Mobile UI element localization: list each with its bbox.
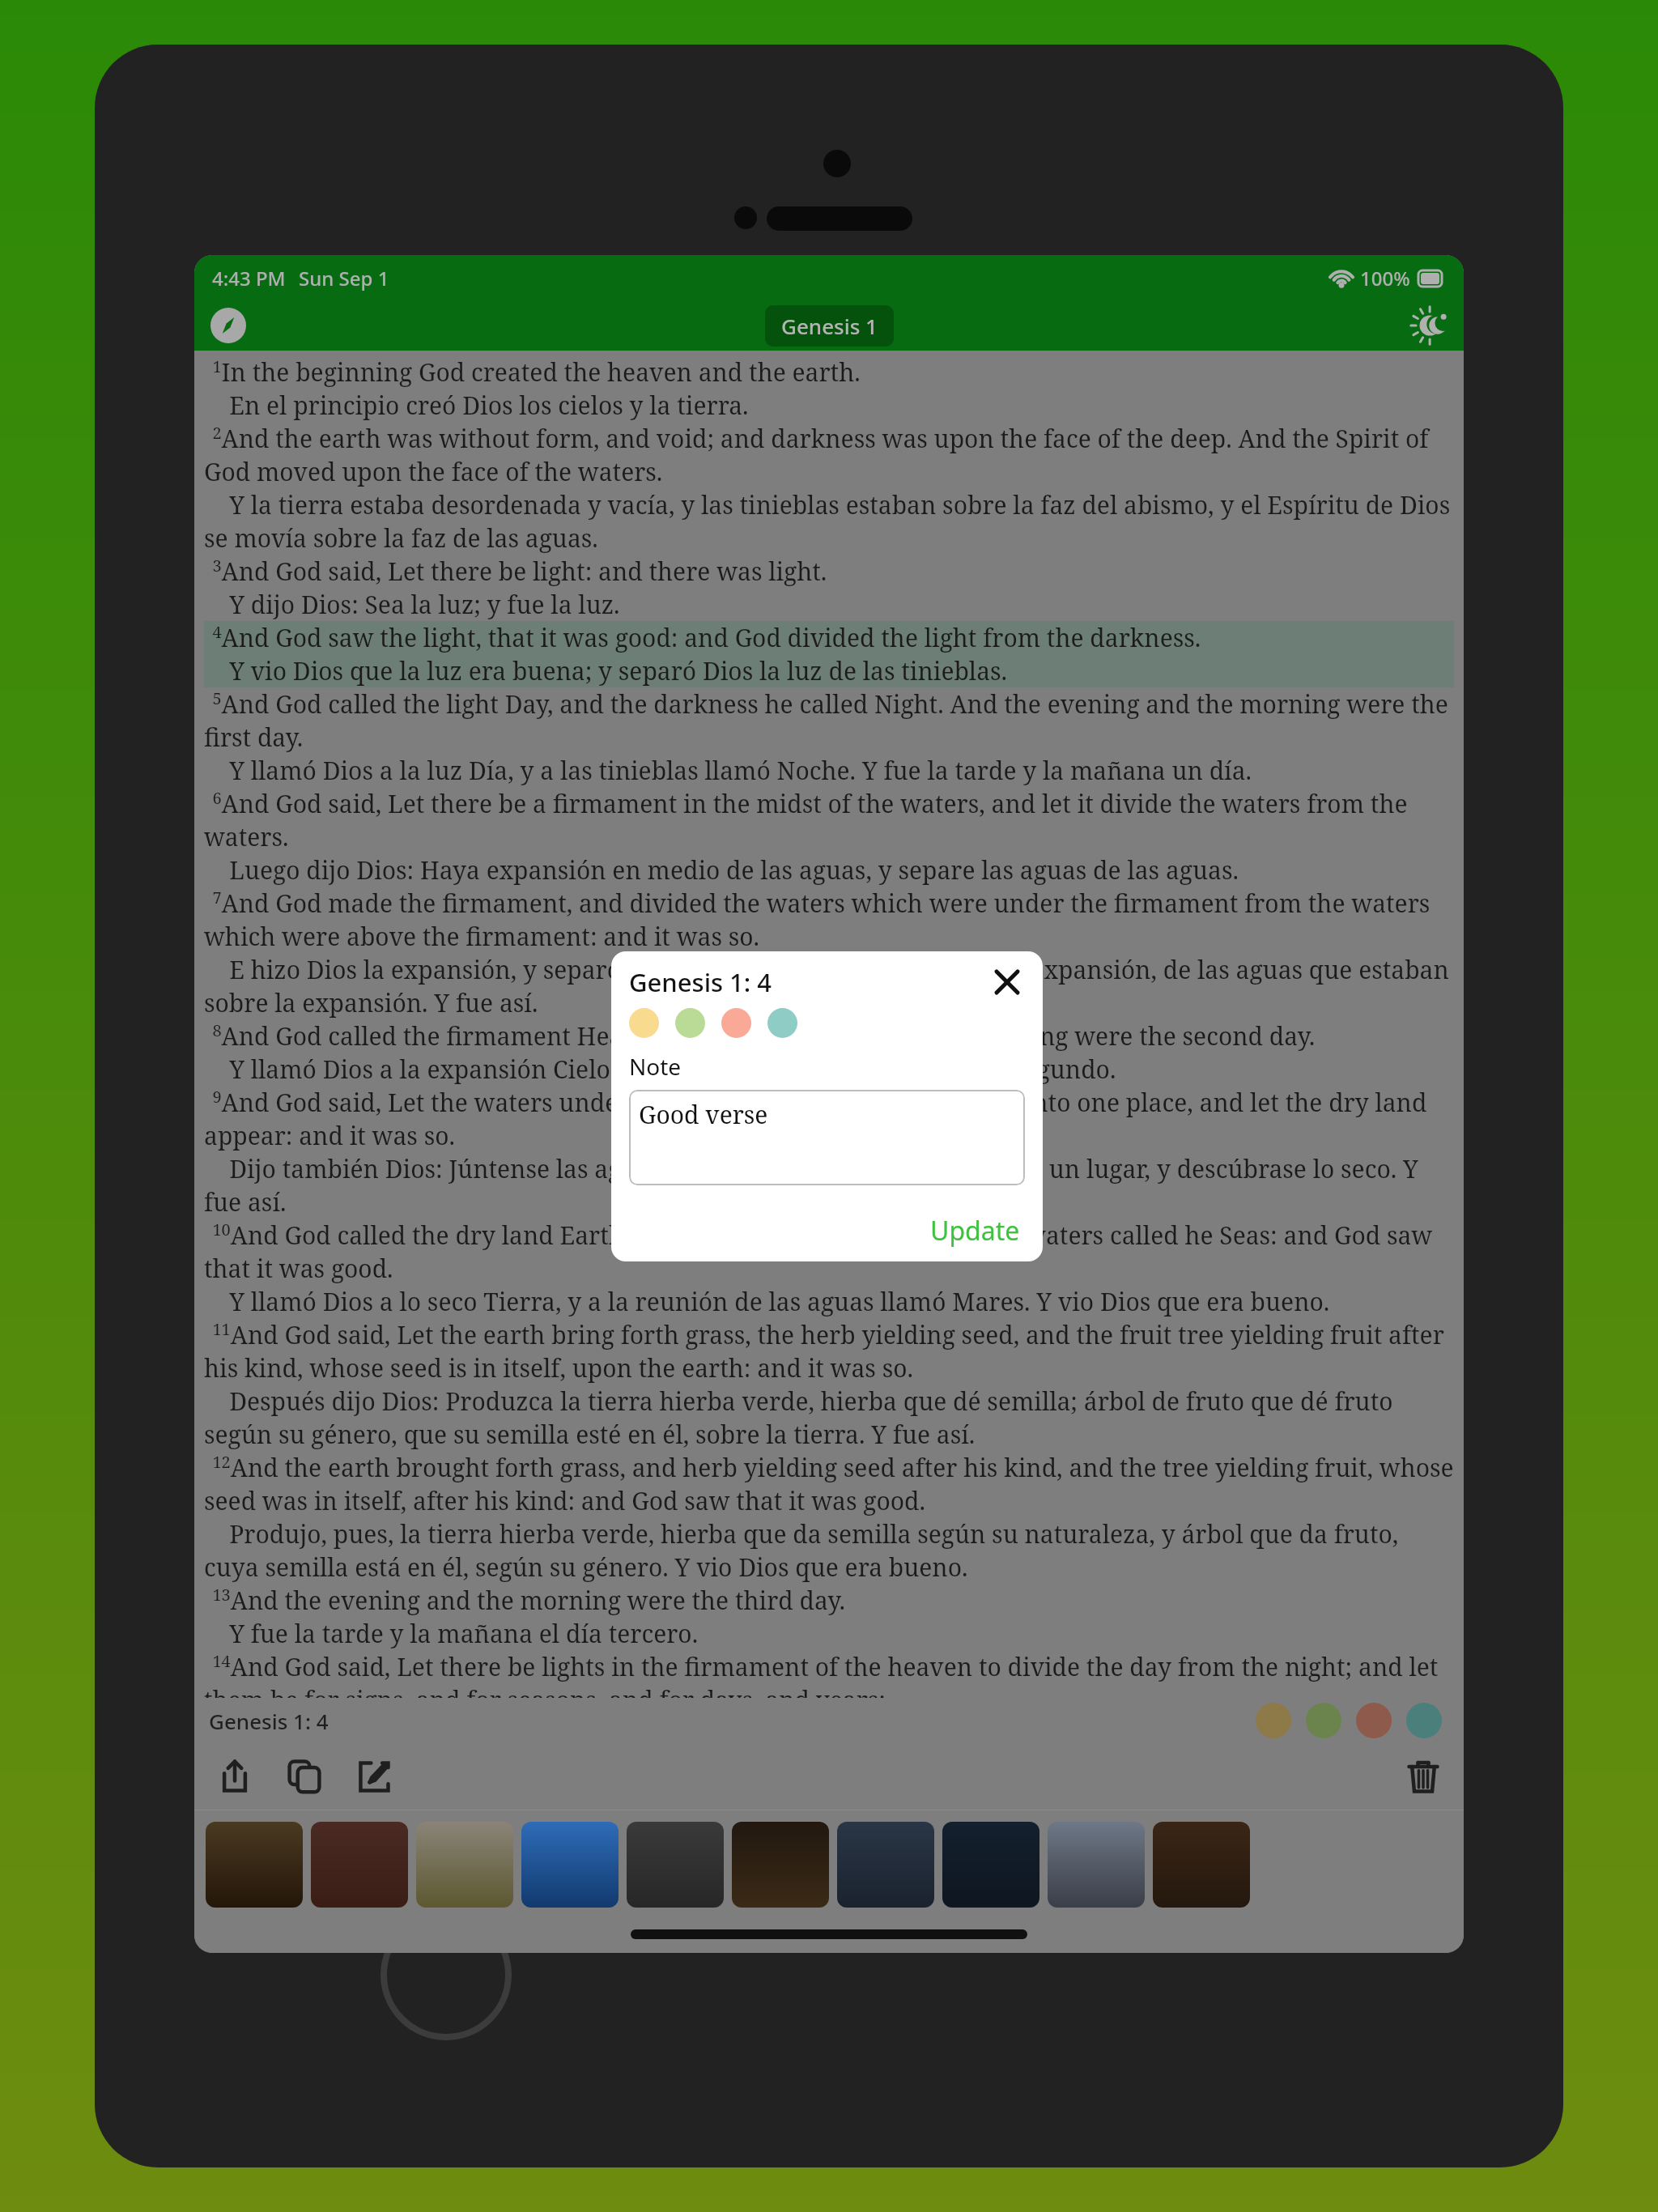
staticText: Y llamó Dios a la expansión Cielos. Y fu… bbox=[204, 1053, 1454, 1086]
button[interactable]: Background image bbox=[1048, 1822, 1145, 1908]
button[interactable]: Close bbox=[989, 964, 1025, 1000]
button[interactable]: Background image bbox=[1153, 1822, 1250, 1908]
button[interactable]: Share bbox=[209, 1750, 261, 1802]
staticText: 5And God called the light Day, and the d… bbox=[204, 687, 1454, 754]
button[interactable]: Highlight colour bbox=[1356, 1703, 1392, 1738]
button[interactable]: 11And God said, Let the earth bring fort… bbox=[204, 1318, 1454, 1451]
button[interactable]: Update bbox=[925, 1208, 1025, 1253]
staticText: Produjo, pues, la tierra hierba verde, h… bbox=[204, 1517, 1454, 1584]
staticText: 6And God said, Let there be a firmament … bbox=[204, 787, 1454, 853]
staticText: Y llamó Dios a la luz Día, y a las tinie… bbox=[204, 754, 1454, 787]
button[interactable]: Navigate bbox=[207, 304, 249, 347]
staticText: Note bbox=[629, 1051, 682, 1082]
button[interactable]: Background image bbox=[627, 1822, 724, 1908]
staticText: Genesis 1: 4 bbox=[209, 1707, 329, 1735]
staticText: Y la tierra estaba desordenada y vacía, … bbox=[204, 488, 1454, 555]
button[interactable]: Background image bbox=[837, 1822, 934, 1908]
button[interactable]: 13And the evening and the morning were t… bbox=[204, 1584, 1454, 1650]
staticText: Y dijo Dios: Sea la luz; y fue la luz. bbox=[204, 588, 1454, 621]
button[interactable]: 3And God said, Let there be light: and t… bbox=[204, 555, 1454, 621]
button[interactable]: 5And God called the light Day, and the d… bbox=[204, 687, 1454, 787]
button[interactable]: Highlight colour bbox=[1256, 1703, 1291, 1738]
button[interactable]: Background image bbox=[942, 1822, 1039, 1908]
button[interactable]: 7And God made the firmament, and divided… bbox=[204, 887, 1454, 1019]
staticText: Luego dijo Dios: Haya expansión en medio… bbox=[204, 853, 1454, 887]
staticText: Genesis 1: 4 bbox=[629, 965, 772, 999]
staticText: 1In the beginning God created the heaven… bbox=[204, 355, 1454, 389]
button[interactable]: Toggle theme bbox=[1407, 304, 1449, 347]
button[interactable]: 14And God said, Let there be lights in t… bbox=[204, 1650, 1454, 1698]
button[interactable]: Highlight colour bbox=[721, 1008, 751, 1038]
staticText: 11And God said, Let the earth bring fort… bbox=[204, 1318, 1454, 1385]
staticText: 2And the earth was without form, and voi… bbox=[204, 422, 1454, 488]
button[interactable]: Edit note bbox=[348, 1750, 400, 1802]
staticText: 12And the earth brought forth grass, and… bbox=[204, 1451, 1454, 1517]
staticText: E hizo Dios la expansión, y separó las a… bbox=[204, 953, 1454, 1019]
button[interactable]: Background image bbox=[416, 1822, 513, 1908]
button[interactable]: Background image bbox=[732, 1822, 829, 1908]
staticText: Update bbox=[930, 1213, 1020, 1249]
button[interactable]: Background image bbox=[311, 1822, 408, 1908]
button[interactable]: Genesis 1 bbox=[765, 305, 894, 347]
button[interactable]: Highlight colour bbox=[767, 1008, 797, 1038]
staticText: 3And God said, Let there be light: and t… bbox=[204, 555, 1454, 588]
staticText: 4And God saw the light, that it was good… bbox=[204, 621, 1454, 654]
button[interactable]: Background image bbox=[206, 1822, 303, 1908]
staticText: 7And God made the firmament, and divided… bbox=[204, 887, 1454, 953]
staticText: Sun Sep 1 bbox=[299, 265, 389, 291]
staticText: Good verse bbox=[639, 1098, 768, 1131]
staticText: 14And God said, Let there be lights in t… bbox=[204, 1650, 1454, 1698]
button[interactable]: 6And God said, Let there be a firmament … bbox=[204, 787, 1454, 887]
staticText: 10And God called the dry land Earth; and… bbox=[204, 1219, 1454, 1285]
button[interactable]: 1In the beginning God created the heaven… bbox=[204, 355, 1454, 422]
staticText: 8And God called the firmament Heaven. An… bbox=[204, 1019, 1454, 1053]
button[interactable]: Background image bbox=[521, 1822, 619, 1908]
button[interactable]: Copy bbox=[278, 1750, 330, 1802]
button[interactable]: 2And the earth was without form, and voi… bbox=[204, 422, 1454, 555]
staticText: Genesis 1 bbox=[781, 312, 878, 340]
staticText: Y fue la tarde y la mañana el día tercer… bbox=[204, 1617, 1454, 1650]
staticText: Dijo también Dios: Júntense las aguas qu… bbox=[204, 1152, 1454, 1219]
button[interactable]: 9And God said, Let the waters under the … bbox=[204, 1086, 1454, 1219]
staticText: 4:43 PM bbox=[212, 265, 286, 291]
staticText: Y vio Dios que la luz era buena; y separ… bbox=[204, 654, 1454, 687]
staticText: 13And the evening and the morning were t… bbox=[204, 1584, 1454, 1617]
button[interactable]: Highlight colour bbox=[1406, 1703, 1442, 1738]
button[interactable]: Delete bbox=[1397, 1750, 1449, 1802]
button[interactable]: Highlight colour bbox=[675, 1008, 705, 1038]
staticText: 9And God said, Let the waters under the … bbox=[204, 1086, 1454, 1152]
staticText: En el principio creó Dios los cielos y l… bbox=[204, 389, 1454, 422]
button[interactable]: Highlight colour bbox=[1306, 1703, 1341, 1738]
button[interactable]: 8And God called the firmament Heaven. An… bbox=[204, 1019, 1454, 1086]
button[interactable]: Highlight colour bbox=[629, 1008, 659, 1038]
button[interactable]: 4And God saw the light, that it was good… bbox=[204, 621, 1454, 687]
button[interactable]: Good verse bbox=[629, 1090, 1025, 1185]
staticText: Después dijo Dios: Produzca la tierra hi… bbox=[204, 1385, 1454, 1451]
button[interactable]: 10And God called the dry land Earth; and… bbox=[204, 1219, 1454, 1318]
staticText: 100% bbox=[1360, 265, 1410, 291]
button[interactable]: 12And the earth brought forth grass, and… bbox=[204, 1451, 1454, 1584]
staticText: Y llamó Dios a lo seco Tierra, y a la re… bbox=[204, 1285, 1454, 1318]
